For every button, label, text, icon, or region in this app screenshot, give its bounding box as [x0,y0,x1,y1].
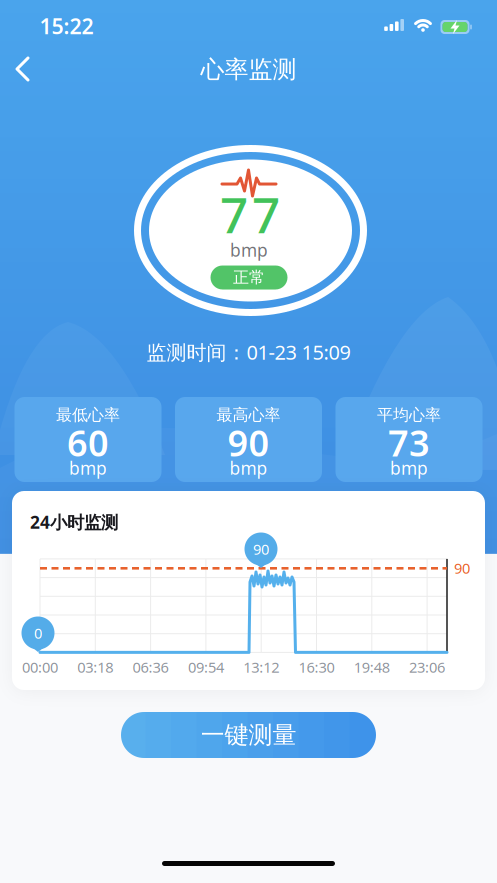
staticText: 最高心率 [216,405,280,425]
staticText: 监测时间：01-23 15:09 [146,339,350,365]
staticText: 60 [67,419,109,466]
staticText: 73 [388,419,430,466]
staticText: 正常 [233,268,265,287]
staticText: 15:22 [39,12,93,40]
staticText: 77 [220,181,280,247]
staticText: 0 [34,623,42,643]
staticText: bmp [69,456,107,479]
staticText: 09:54 [188,657,224,677]
staticText: 心率监测 [200,55,296,84]
staticText: 03:18 [77,657,113,677]
staticText: 06:36 [133,657,169,677]
staticText: bmp [390,456,428,479]
staticText: 最低心率 [56,405,120,425]
staticText: 23:06 [409,657,445,677]
staticText: 90 [454,558,470,578]
staticText: 16:30 [298,657,334,677]
staticText: 24小时监测 [30,510,118,533]
button[interactable]: Back [0,47,44,91]
staticText: bmp [230,238,268,261]
staticText: 90 [227,419,269,466]
staticText: 00:00 [22,657,58,677]
staticText: 13:12 [243,657,279,677]
button[interactable]: 一键测量 [121,712,376,758]
staticText: 90 [253,539,269,559]
staticText: bmp [229,456,267,479]
staticText: 19:48 [354,657,390,677]
staticText: 平均心率 [377,405,441,425]
staticText: 一键测量 [200,720,296,750]
